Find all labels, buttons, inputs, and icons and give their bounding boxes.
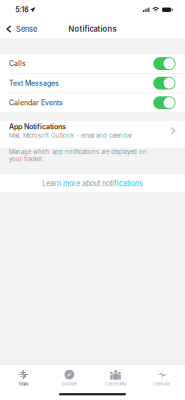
button[interactable]: Sense	[0, 20, 43, 38]
button[interactable]: Learn more about notifications	[0, 175, 185, 192]
staticText: Notifications	[68, 24, 116, 33]
staticText: Sense	[16, 24, 37, 33]
button[interactable]: Today	[0, 367, 46, 388]
button[interactable]: Discover	[46, 367, 92, 388]
staticText: Today	[18, 382, 28, 386]
button[interactable]: Calls	[0, 54, 185, 73]
staticText: Learn more about notifications	[42, 179, 143, 188]
staticText: Mail, Microsoft Outlook - email and cale…	[9, 132, 132, 139]
button[interactable]: Premium	[139, 367, 185, 388]
staticText: Premium	[153, 382, 170, 386]
button[interactable]: Community	[92, 367, 139, 388]
staticText: Text Messages	[9, 79, 59, 87]
staticText: Calendar Events	[9, 98, 63, 107]
staticText: Community	[105, 382, 126, 386]
staticText: Discover	[61, 382, 77, 386]
button[interactable]: Calendar Events	[0, 93, 185, 112]
staticText: 5:16	[15, 6, 28, 14]
button[interactable]: Text Messages	[0, 74, 185, 93]
staticText: Calls	[9, 59, 26, 68]
button[interactable]: App Notifications	[0, 121, 185, 148]
staticText: App Notifications	[9, 122, 66, 131]
staticText: Manage which app notifications are displ…	[9, 148, 147, 163]
